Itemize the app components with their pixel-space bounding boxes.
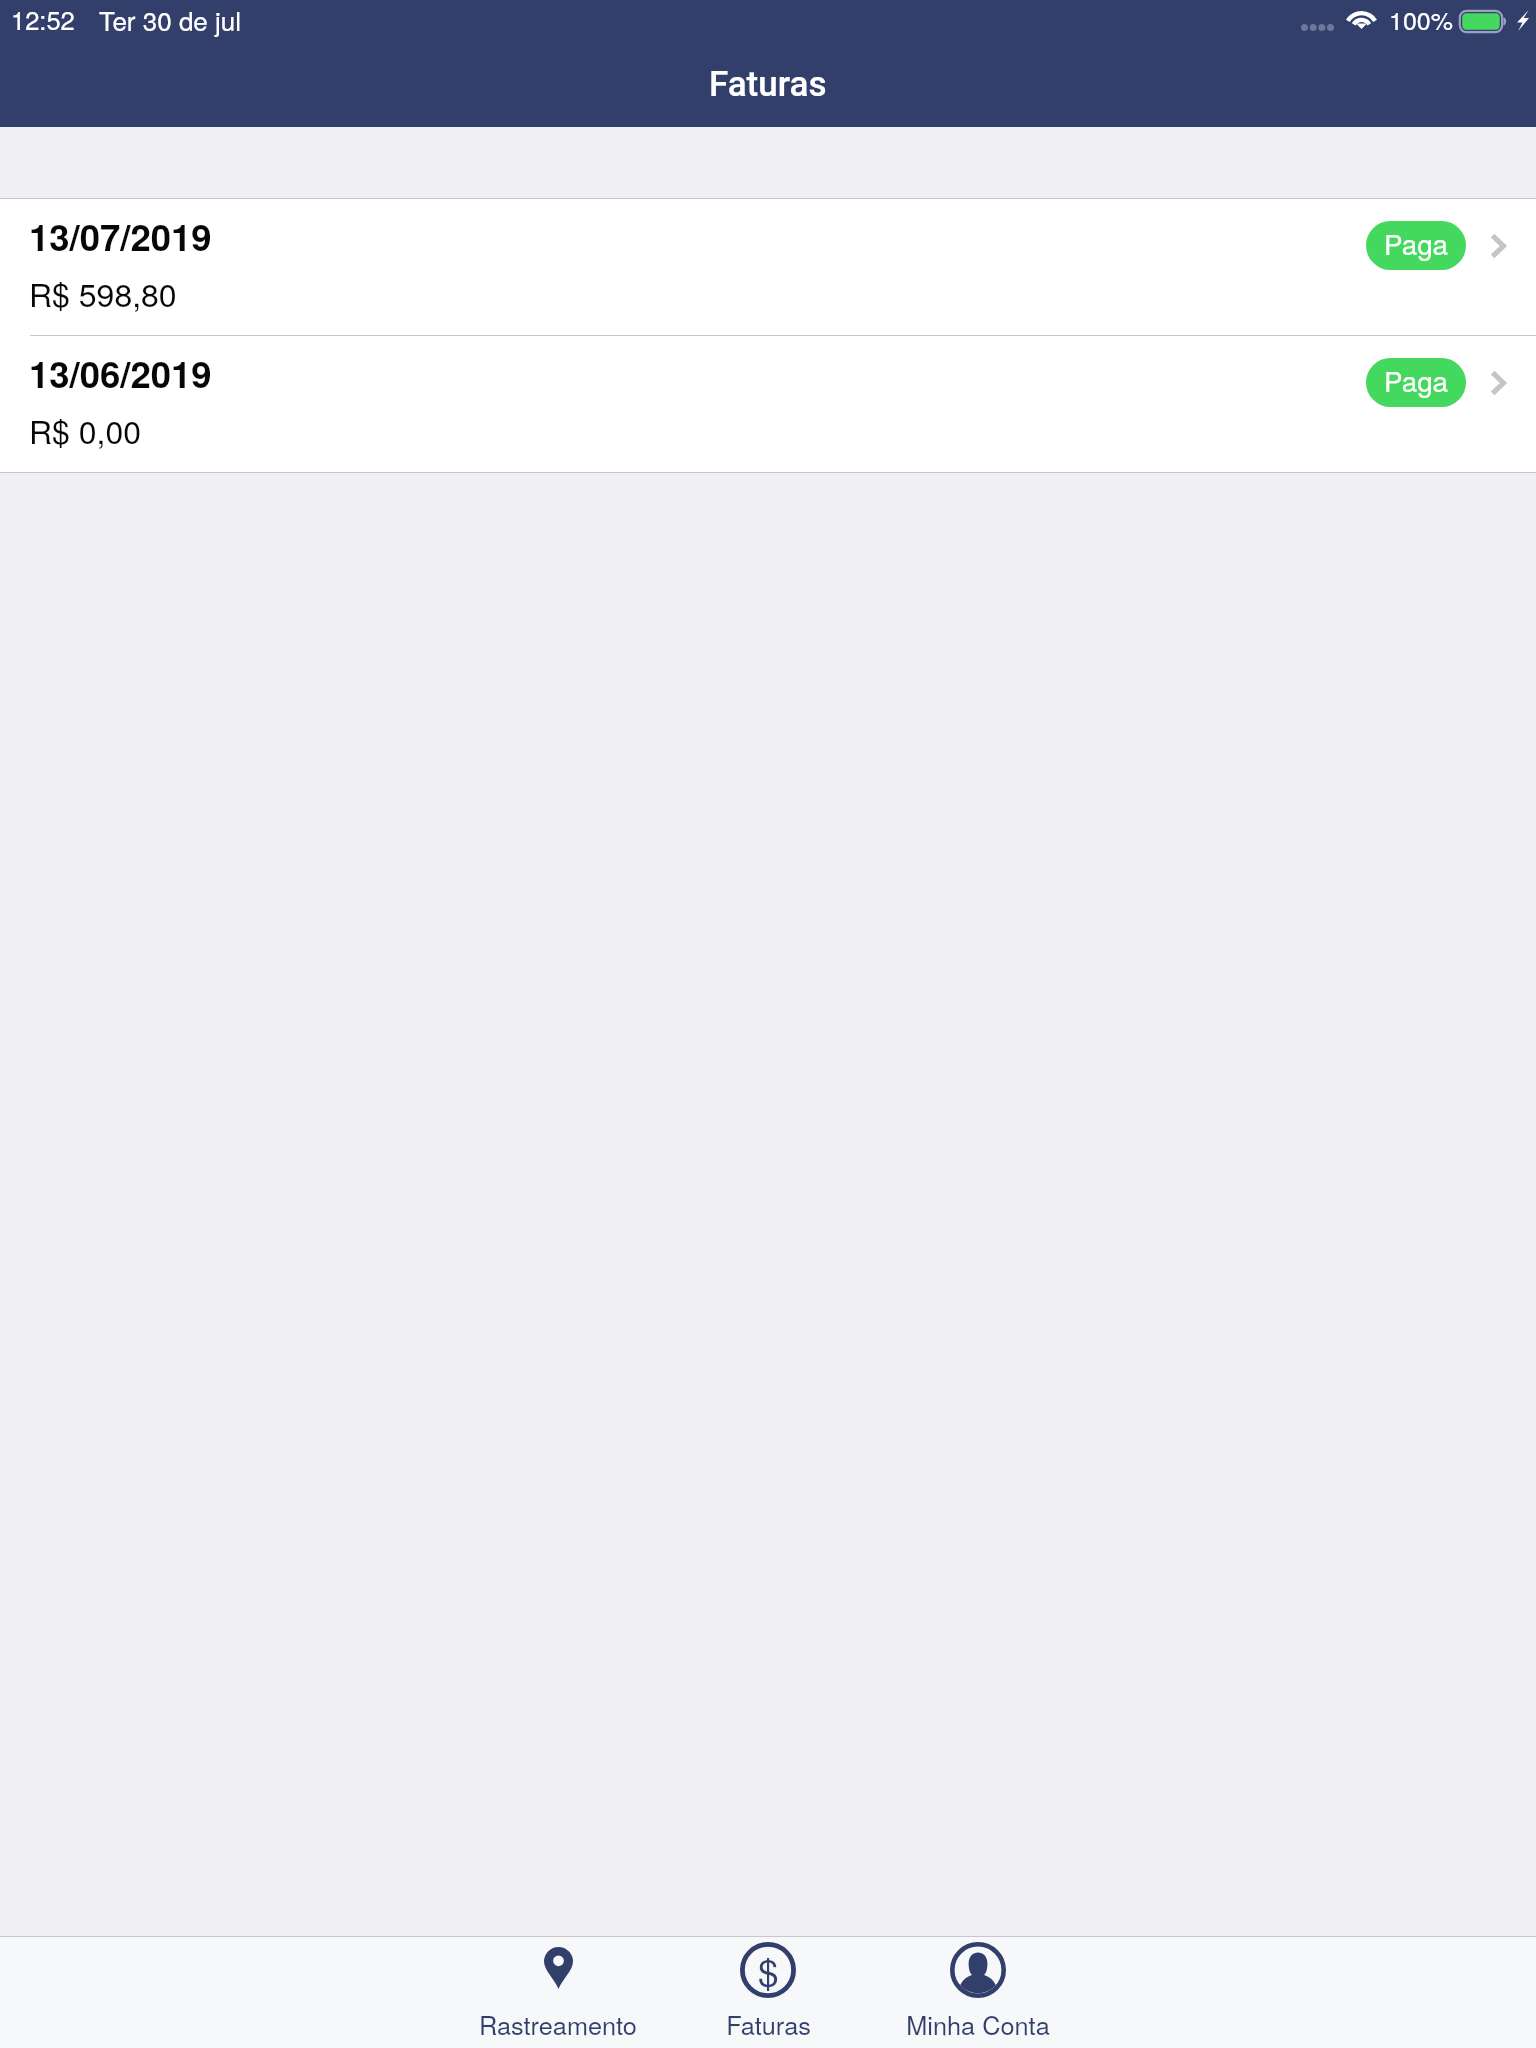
staticText: Minha Conta [906, 2006, 1050, 2042]
button[interactable]: Faturas [668, 1937, 868, 2048]
staticText: 13/06/2019 [29, 347, 212, 399]
staticText: Paga [1384, 223, 1448, 263]
staticText: Rastreamento [479, 2006, 637, 2042]
staticText: $ [758, 1944, 779, 1997]
staticText: Paga [1384, 360, 1448, 400]
staticText: Faturas [709, 64, 827, 105]
button[interactable]: Minha Conta [878, 1937, 1078, 2048]
other: Minha Conta [950, 1942, 1006, 1998]
button[interactable]: Rastreamento [458, 1937, 658, 2048]
staticText: R$ 598,80 [29, 270, 177, 316]
other: Faturas [740, 1942, 796, 1998]
staticText: 12:52 [11, 1, 75, 38]
staticText: Faturas [726, 2006, 811, 2042]
button[interactable]: 13/06/2019 [0, 336, 1536, 472]
staticText: Ter 30 de jul [99, 1, 242, 38]
other: Rastreamento [544, 1947, 573, 1989]
button[interactable]: 13/07/2019 [0, 199, 1536, 335]
staticText: R$ 0,00 [29, 407, 142, 453]
staticText: 13/07/2019 [29, 210, 212, 262]
staticText: 100% [1389, 1, 1453, 37]
